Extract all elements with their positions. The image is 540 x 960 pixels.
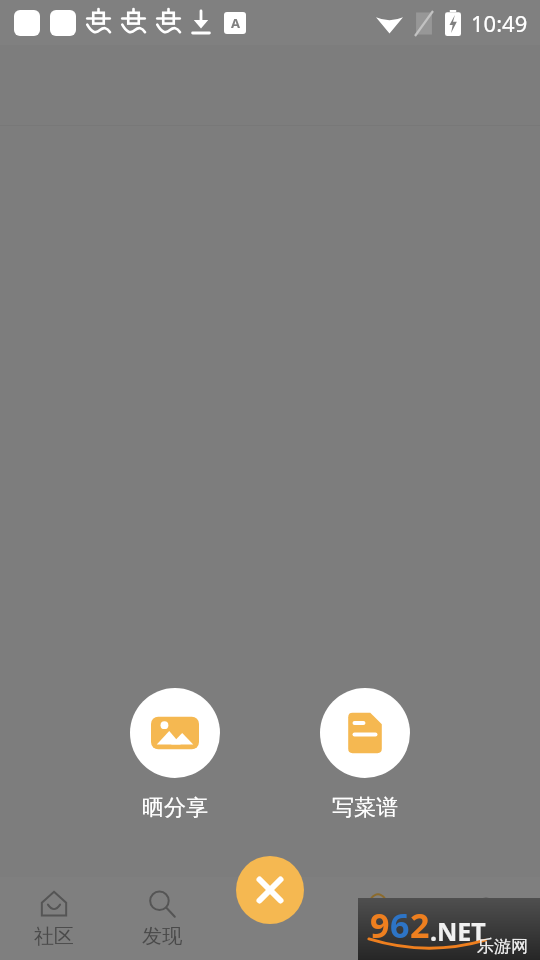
staticText: 好物 bbox=[358, 924, 398, 949]
staticText: 发现 bbox=[142, 924, 182, 949]
staticText: 10:49 bbox=[471, 8, 528, 38]
button[interactable]: Profile bbox=[432, 877, 540, 960]
button[interactable]: 好物 bbox=[324, 877, 432, 960]
button[interactable]: Close bbox=[236, 856, 304, 924]
button[interactable]: Share photo bbox=[126, 684, 224, 826]
staticText: 晒分享 bbox=[142, 794, 208, 822]
staticText: 乐游网 bbox=[477, 936, 528, 957]
button[interactable]: 发现 bbox=[108, 877, 216, 960]
staticText: 6 bbox=[390, 902, 410, 948]
staticText: 社区 bbox=[34, 924, 74, 949]
staticText: 写菜谱 bbox=[332, 794, 398, 822]
staticText: .NET bbox=[430, 914, 486, 948]
staticText: 9 bbox=[370, 902, 390, 948]
staticText: A bbox=[231, 14, 240, 32]
staticText: 2 bbox=[410, 902, 430, 948]
button[interactable]: 社区 bbox=[0, 877, 108, 960]
button[interactable]: Write recipe bbox=[316, 684, 414, 826]
